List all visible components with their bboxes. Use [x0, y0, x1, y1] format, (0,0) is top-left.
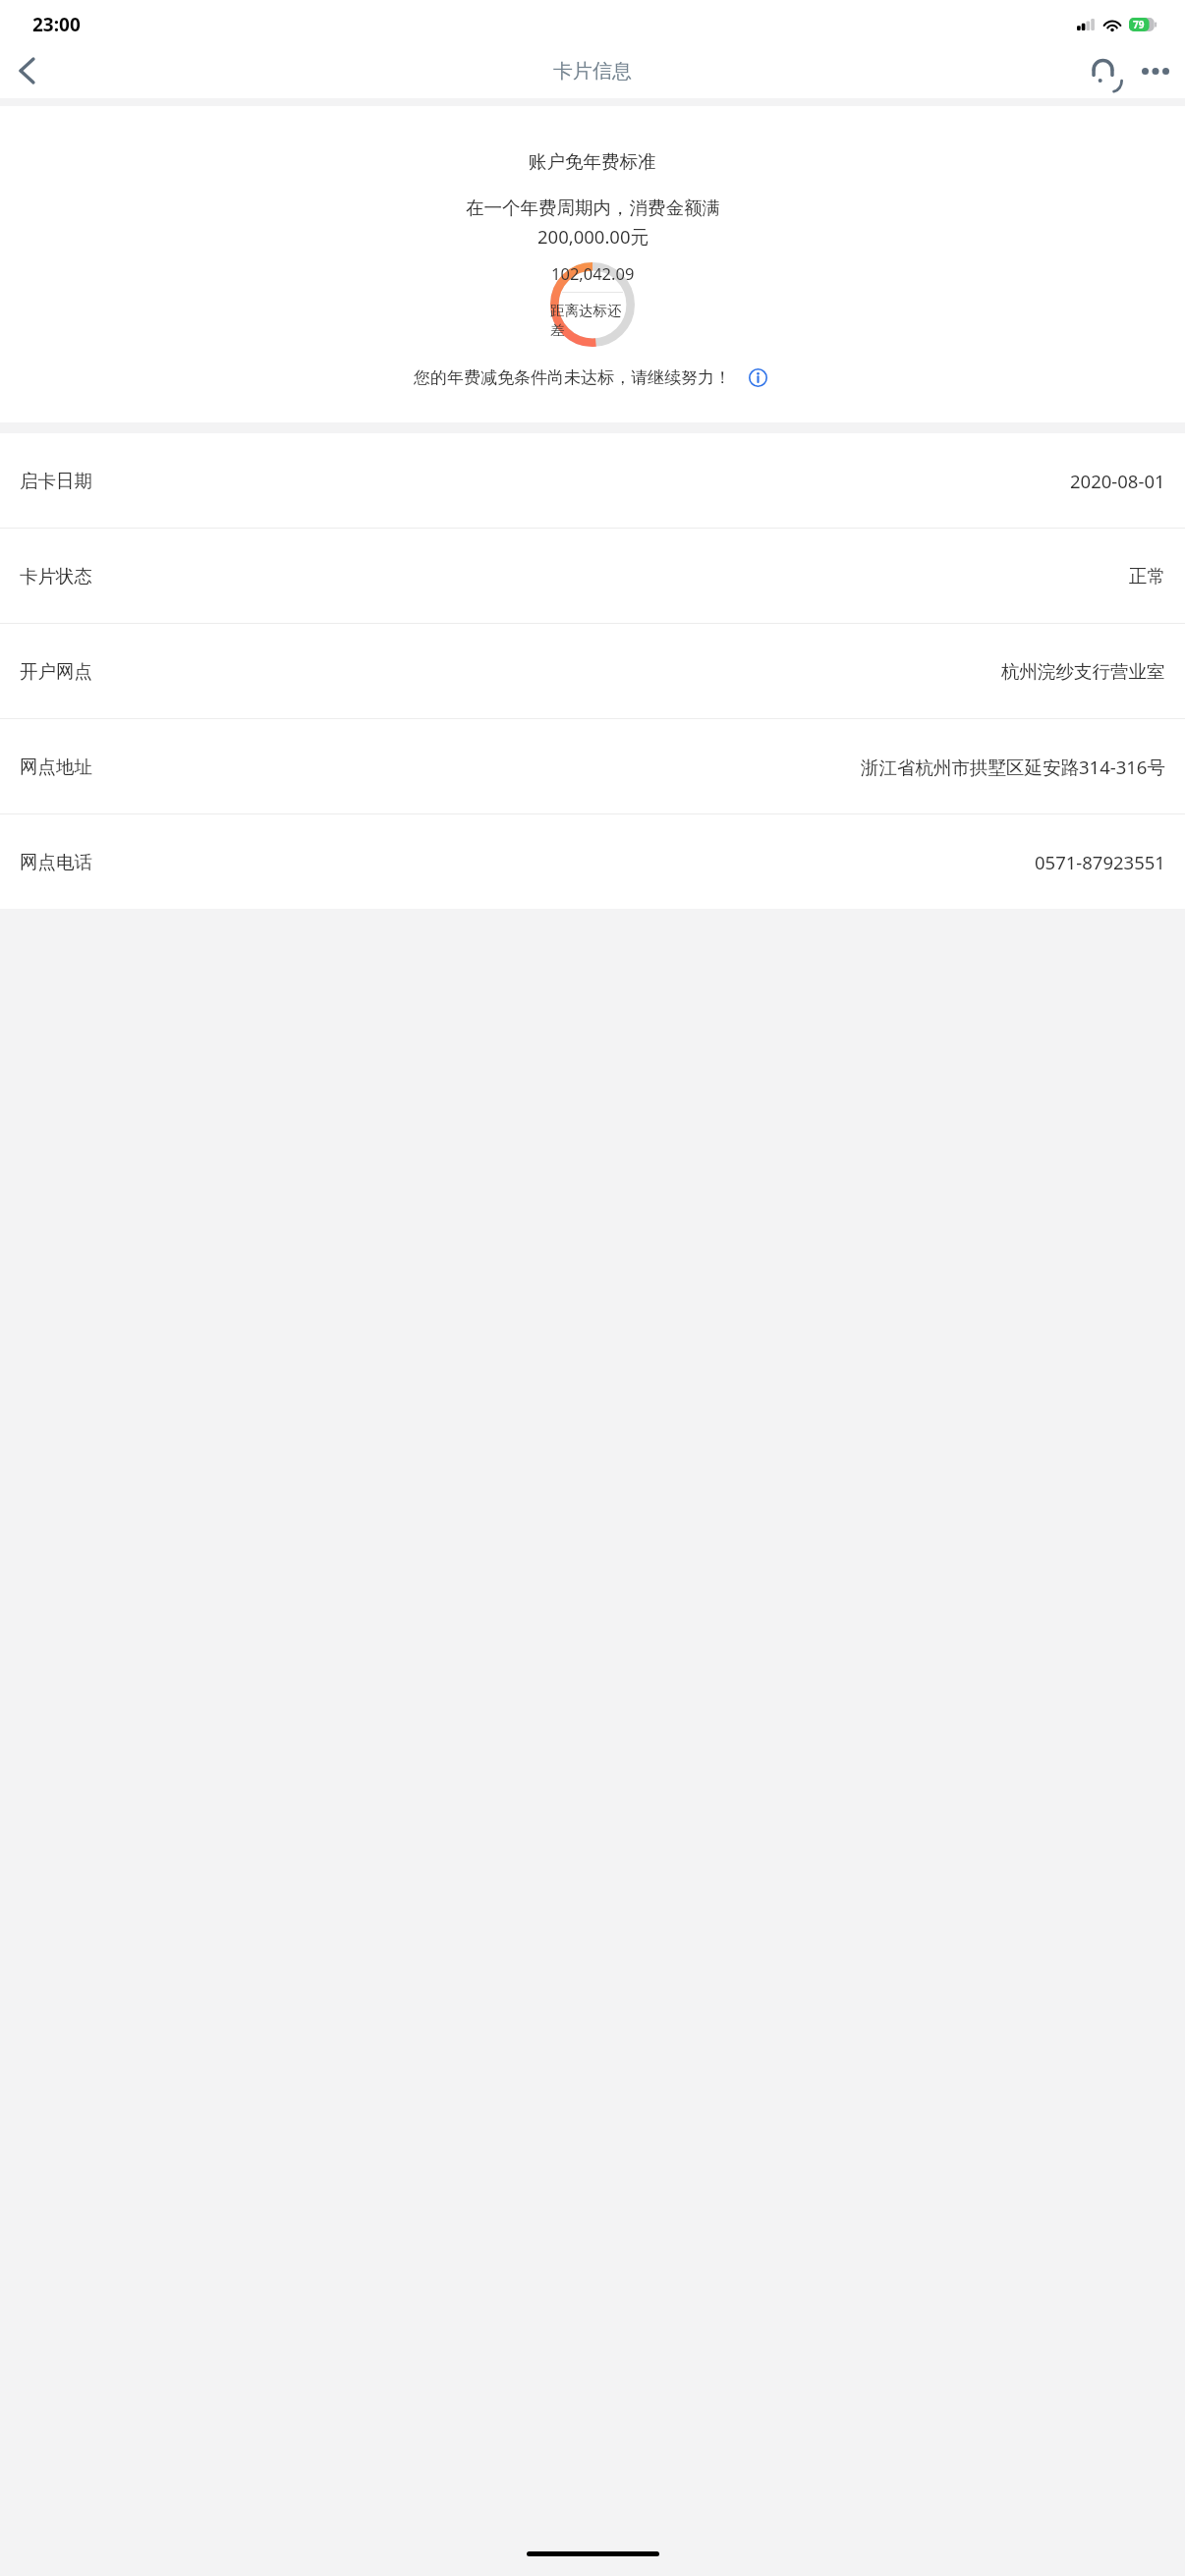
staticText: 启卡日期 — [20, 470, 92, 492]
staticText: 正常 — [1129, 565, 1165, 588]
staticText: 在一个年费周期内，消费金额满 200,000.00元 — [466, 196, 720, 249]
button[interactable]: 网点地址 — [0, 719, 1185, 813]
staticText: 卡片信息 — [553, 59, 632, 84]
button[interactable]: 网点电话 — [0, 814, 1185, 909]
staticText: 网点地址 — [20, 756, 92, 778]
staticText: 2020-08-01 — [1070, 469, 1165, 493]
staticText: 79 — [1133, 18, 1145, 31]
button[interactable]: More options — [1129, 44, 1182, 97]
staticText: 距离达标还差 — [550, 302, 635, 339]
button[interactable]: 启卡日期 — [0, 433, 1185, 528]
staticText: 开户网点 — [20, 660, 92, 683]
button[interactable]: Customer service — [1076, 44, 1129, 97]
staticText: 卡片状态 — [20, 565, 92, 588]
staticText: 您的年费减免条件尚未达标，请继续努力！ — [414, 367, 731, 388]
staticText: 网点电话 — [20, 851, 92, 873]
staticText: 0571-87923551 — [1035, 850, 1165, 874]
staticText: 浙江省杭州市拱墅区延安路314-316号 — [861, 755, 1165, 779]
staticText: 杭州浣纱支行营业室 — [1001, 660, 1165, 683]
button[interactable]: More information — [743, 363, 772, 392]
staticText: 23:00 — [32, 12, 81, 37]
button[interactable]: 卡片状态 — [0, 529, 1185, 623]
staticText: 账户免年费标准 — [529, 150, 656, 173]
button[interactable]: Back — [0, 44, 53, 97]
staticText: 102,042.09 — [551, 262, 635, 284]
button[interactable]: 开户网点 — [0, 624, 1185, 718]
